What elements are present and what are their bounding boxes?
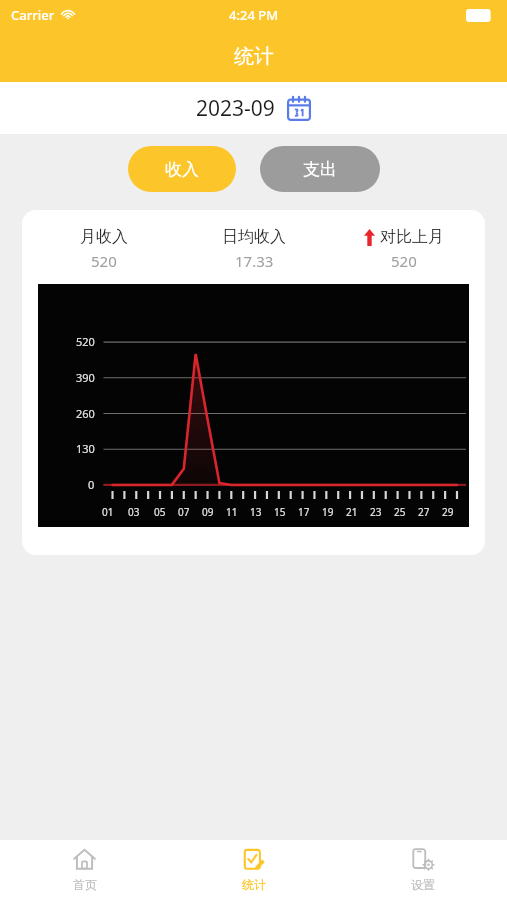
staticText: 01 <box>102 505 114 519</box>
staticText: 11 <box>226 505 238 519</box>
staticText: 0 <box>88 477 95 492</box>
staticText: 260 <box>76 406 95 421</box>
staticText: 月收入 <box>80 227 128 247</box>
staticText: 17.33 <box>235 251 274 271</box>
staticText: 520 <box>76 334 95 349</box>
staticText: 2023-09 <box>196 94 275 123</box>
staticText: 23 <box>370 505 382 519</box>
staticText: 统计 <box>242 877 266 892</box>
staticText: 25 <box>394 505 406 519</box>
staticText: 统计 <box>234 44 274 69</box>
other: 设置 <box>411 848 434 871</box>
staticText: 15 <box>274 505 286 519</box>
staticText: 390 <box>76 370 95 385</box>
staticText: 09 <box>202 505 214 519</box>
other: 首页 <box>73 848 96 871</box>
staticText: 07 <box>178 505 190 519</box>
staticText: 设置 <box>411 877 435 892</box>
staticText: 首页 <box>73 877 97 892</box>
staticText: 03 <box>128 505 140 519</box>
other: 选择日期 <box>286 96 312 122</box>
button[interactable]: 支出 <box>260 146 380 192</box>
staticText: Carrier <box>11 6 55 24</box>
button[interactable]: 统计 <box>169 840 338 900</box>
button[interactable]: 设置 <box>338 840 507 900</box>
staticText: 13 <box>250 505 262 519</box>
staticText: 19 <box>322 505 334 519</box>
button[interactable]: 首页 <box>0 840 169 900</box>
button[interactable]: 收入 <box>128 146 236 192</box>
staticText: 520 <box>391 251 417 271</box>
staticText: 130 <box>76 441 95 456</box>
staticText: 对比上月 <box>380 227 444 247</box>
staticText: 27 <box>418 505 430 519</box>
staticText: 4:24 PM <box>229 6 279 24</box>
staticText: 21 <box>346 505 358 519</box>
other: 统计 <box>242 848 265 871</box>
staticText: 520 <box>91 251 117 271</box>
staticText: 日均收入 <box>222 227 286 247</box>
staticText: 支出 <box>303 159 337 180</box>
staticText: 29 <box>442 505 454 519</box>
staticText: 05 <box>154 505 166 519</box>
button[interactable]: 2023-09 <box>188 89 320 128</box>
staticText: 收入 <box>165 159 199 180</box>
staticText: 17 <box>298 505 310 519</box>
